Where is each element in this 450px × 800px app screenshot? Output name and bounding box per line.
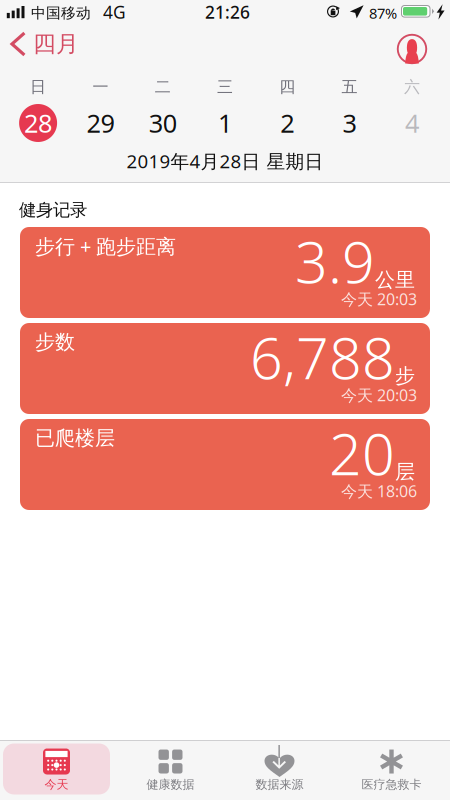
button[interactable]: 已爬楼层 (20, 419, 430, 510)
staticText: 28 (24, 106, 52, 140)
button[interactable]: 二 (131, 74, 194, 150)
staticText: 日 (30, 77, 46, 97)
button[interactable]: 六 (381, 74, 443, 150)
staticText: 已爬楼层 (35, 426, 115, 450)
staticText: 步数 (35, 330, 75, 354)
button[interactable]: 数据来源 (226, 743, 333, 794)
staticText: 层 (395, 459, 415, 484)
staticText: 步行 + 跑步距离 (35, 233, 176, 259)
staticText: 六 (404, 77, 420, 97)
button[interactable]: 医疗急救卡 (337, 743, 446, 794)
staticText: 21:26 (205, 0, 250, 23)
button[interactable]: 四 (256, 74, 318, 150)
staticText: 二 (155, 77, 171, 97)
staticText: 2 (280, 106, 294, 140)
staticText: 中国移动 (31, 4, 91, 22)
staticText: 4 (405, 106, 419, 140)
staticText: 今天 20:03 (341, 288, 417, 310)
staticText: 4G (103, 0, 126, 23)
button[interactable]: 个人资料 (390, 27, 434, 71)
staticText: 87% (369, 3, 397, 23)
button[interactable]: 步数 (20, 323, 430, 414)
staticText: 今天 18:06 (341, 480, 417, 502)
staticText: 五 (342, 77, 358, 97)
staticText: 四 (279, 77, 295, 97)
staticText: 数据来源 (255, 777, 303, 792)
button[interactable]: 四月 (0, 27, 82, 72)
staticText: 今天 (44, 777, 68, 792)
button[interactable]: 健康数据 (117, 743, 224, 794)
staticText: 29 (86, 106, 114, 140)
staticText: 1 (218, 106, 232, 140)
staticText: 3 (343, 106, 357, 140)
staticText: 今天 20:03 (341, 384, 417, 406)
staticText: 步 (395, 363, 415, 388)
staticText: 健康数据 (146, 777, 194, 792)
button[interactable]: 一 (69, 74, 131, 150)
button[interactable]: 步行 + 跑步距离 (20, 227, 430, 318)
button[interactable]: 五 (318, 74, 381, 150)
staticText: 一 (92, 77, 108, 97)
staticText: 6,788 (250, 319, 395, 395)
staticText: 公里 (375, 267, 415, 292)
staticText: 健身记录 (19, 199, 87, 221)
button[interactable]: 今天 (3, 743, 110, 794)
button[interactable]: 日 (7, 74, 69, 150)
staticText: 2019年4月28日 星期日 (126, 149, 323, 173)
button[interactable]: 三 (194, 74, 256, 150)
staticText: 四月 (33, 30, 79, 58)
staticText: 20 (329, 415, 395, 491)
staticText: 医疗急救卡 (361, 777, 421, 792)
staticText: 三 (217, 77, 233, 97)
staticText: 3.9 (295, 223, 375, 299)
staticText: 30 (149, 106, 177, 140)
